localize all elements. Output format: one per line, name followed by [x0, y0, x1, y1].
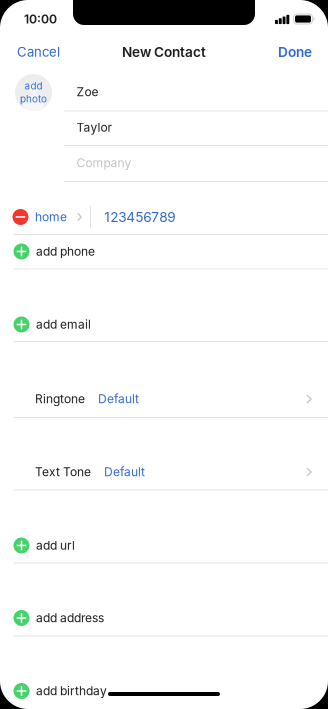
staticText: add email — [36, 317, 91, 332]
button[interactable]: add address — [0, 601, 328, 635]
button[interactable]: add url — [0, 528, 328, 562]
staticText: 123456789 — [104, 209, 175, 225]
staticText: Taylor — [76, 120, 112, 135]
staticText: add address — [36, 611, 104, 625]
staticText: New Contact — [122, 44, 206, 60]
button[interactable]: Add photo — [15, 74, 52, 111]
staticText: photo — [20, 93, 47, 105]
staticText: add — [24, 80, 42, 92]
staticText: add phone — [36, 244, 95, 259]
staticText: add birthday — [36, 684, 107, 698]
button[interactable]: add birthday — [0, 674, 328, 708]
staticText: Text Tone — [35, 465, 91, 479]
staticText: Default — [104, 465, 145, 479]
button[interactable]: Remove phone number — [12, 209, 28, 225]
staticText: Ringtone — [35, 392, 85, 406]
button[interactable]: Done — [268, 38, 328, 66]
staticText: Cancel — [17, 44, 60, 60]
staticText: Company — [76, 156, 131, 170]
staticText: add url — [36, 538, 75, 553]
button[interactable]: add phone — [0, 234, 328, 268]
button[interactable]: add email — [0, 307, 328, 341]
button[interactable]: Text Tone — [0, 455, 328, 489]
staticText: Zoe — [76, 85, 98, 99]
staticText: 10:00 — [24, 11, 57, 26]
staticText: Default — [98, 392, 139, 406]
staticText: home — [35, 210, 67, 224]
staticText: Done — [278, 44, 312, 60]
button[interactable]: Cancel — [0, 38, 70, 66]
button[interactable]: Ringtone — [0, 382, 328, 416]
